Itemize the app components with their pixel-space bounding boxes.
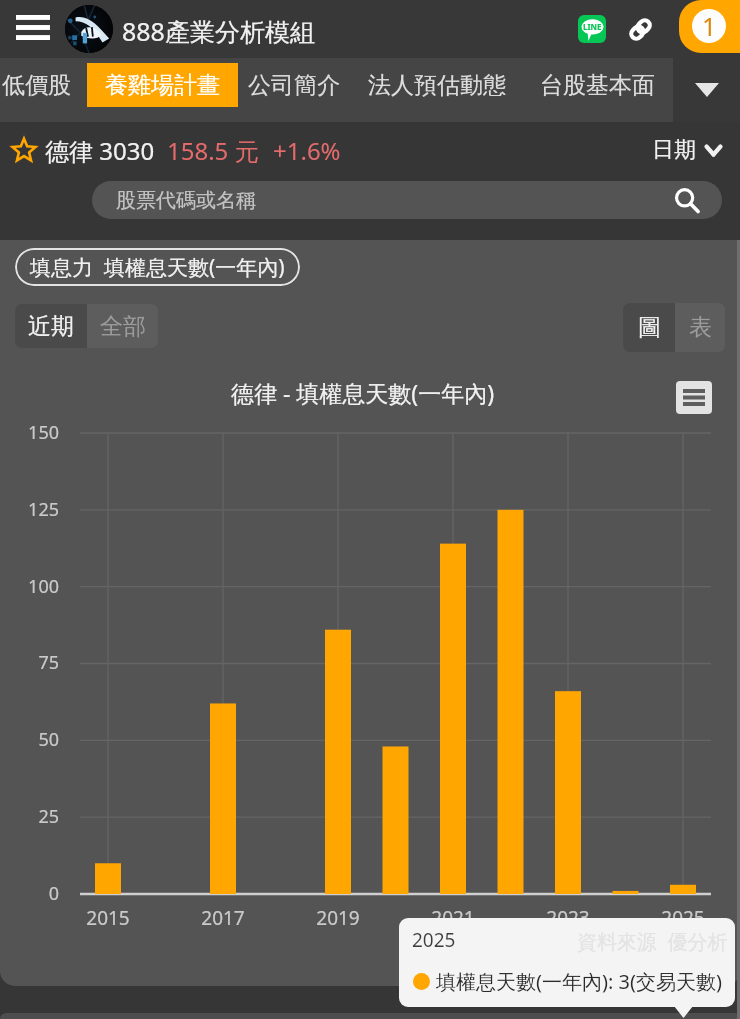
button[interactable]: 養雞場計畫	[87, 63, 238, 107]
staticText: 圖	[638, 313, 661, 342]
button[interactable]: 低價股	[0, 63, 89, 107]
staticText: 養雞場計畫	[105, 71, 220, 100]
staticText: 德律 3030	[45, 134, 155, 167]
button[interactable]: 公司簡介	[230, 63, 358, 107]
button[interactable]: 填息力 填權息天數(一年內)	[15, 248, 300, 286]
button[interactable]: Show all tabs	[673, 58, 740, 122]
button[interactable]: Share to LINE	[570, 7, 614, 51]
button[interactable]: 台股基本面	[522, 63, 673, 107]
staticText: 台股基本面	[540, 71, 655, 100]
staticText: 150	[0, 420, 59, 445]
staticText: 1	[702, 9, 717, 43]
button[interactable]: 股票代碼或名稱	[92, 181, 722, 219]
button[interactable]: Menu	[0, 5, 66, 53]
staticText: 2017	[183, 905, 263, 931]
staticText: 公司簡介	[248, 71, 340, 100]
button[interactable]: Profile	[65, 5, 113, 53]
staticText: 2023	[528, 905, 608, 931]
staticText: LINE	[583, 21, 602, 32]
staticText: 2025	[412, 927, 456, 953]
staticText: 25	[0, 804, 59, 829]
staticText: 100	[0, 574, 59, 599]
staticText: 股票代碼或名稱	[116, 188, 256, 213]
staticText: 填權息天數(一年內): 3(交易天數)	[436, 968, 722, 995]
button[interactable]: Date selector	[648, 130, 726, 170]
staticText: 低價股	[2, 71, 71, 100]
button[interactable]: 全部	[87, 304, 158, 348]
staticText: +1.6%	[273, 134, 341, 167]
staticText: 德律 - 填權息天數(一年內)	[231, 377, 495, 408]
staticText: 2021	[413, 905, 493, 931]
staticText: 2025	[643, 905, 723, 931]
staticText: 888產業分析模組	[122, 14, 315, 48]
staticText: 資料來源 優分析	[577, 928, 728, 955]
button[interactable]: 近期	[15, 304, 87, 348]
button[interactable]: Chart menu	[676, 381, 712, 414]
staticText: 全部	[100, 312, 146, 341]
staticText: 75	[0, 650, 59, 675]
staticText: 法人預估動態	[368, 71, 506, 100]
staticText: 158.5 元	[167, 134, 259, 167]
staticText: 2019	[298, 905, 378, 931]
button[interactable]: Notifications: 1	[679, 0, 740, 53]
staticText: 表	[689, 313, 712, 342]
staticText: 0	[0, 881, 59, 906]
staticText: 填息力 填權息天數(一年內)	[30, 253, 285, 282]
button[interactable]: Copy link	[624, 13, 656, 45]
staticText: 125	[0, 497, 59, 522]
staticText: 50	[0, 727, 59, 752]
button[interactable]: 表	[675, 303, 725, 352]
staticText: 近期	[28, 312, 74, 341]
staticText: 日期	[652, 136, 696, 164]
staticText: 2015	[68, 905, 148, 931]
button[interactable]: 法人預估動態	[350, 63, 524, 107]
button[interactable]: Add to favourites	[6, 132, 42, 168]
button[interactable]: 圖	[623, 303, 675, 352]
